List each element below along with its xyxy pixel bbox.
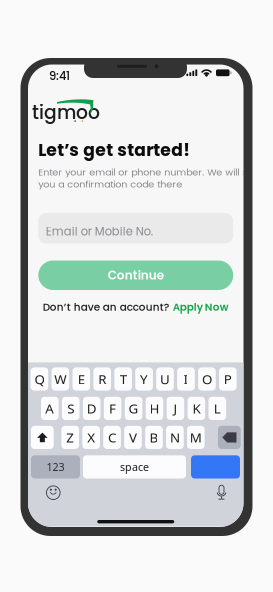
- button[interactable]: 123: [31, 455, 80, 478]
- staticText: 123: [46, 460, 64, 474]
- staticText: M: [190, 428, 202, 446]
- button[interactable]: space: [83, 455, 186, 478]
- staticText: X: [87, 428, 95, 446]
- button[interactable]: H: [146, 397, 163, 420]
- button[interactable]: P: [219, 367, 237, 391]
- button[interactable]: A: [41, 397, 59, 420]
- staticText: D: [87, 399, 97, 417]
- staticText: F: [109, 399, 116, 417]
- button[interactable]: L: [208, 397, 226, 420]
- button[interactable]: J: [167, 397, 184, 420]
- button[interactable]: R: [93, 367, 111, 391]
- button[interactable]: S: [62, 397, 79, 420]
- staticText: J: [173, 399, 177, 417]
- button[interactable]: Apply Now: [173, 300, 229, 314]
- staticText: Y: [140, 370, 148, 388]
- staticText: S: [67, 399, 74, 417]
- staticText: G: [129, 399, 139, 417]
- staticText: Continue: [108, 267, 164, 284]
- staticText: E: [78, 370, 85, 388]
- button[interactable]: Z: [61, 426, 79, 449]
- button[interactable]: Q: [31, 367, 48, 391]
- button[interactable]: F: [104, 397, 121, 420]
- button[interactable]: C: [103, 426, 121, 449]
- button[interactable]: U: [156, 367, 174, 391]
- staticText: T: [120, 370, 127, 388]
- button[interactable]: Dictate: [216, 485, 227, 500]
- staticText: Enter your email or phone number. We wil…: [38, 165, 265, 179]
- button[interactable]: B: [145, 426, 163, 449]
- staticText: U: [160, 370, 170, 388]
- staticText: R: [98, 370, 106, 388]
- button[interactable]: O: [198, 367, 216, 391]
- button[interactable]: E: [72, 367, 90, 391]
- button[interactable]: I: [177, 367, 195, 391]
- button[interactable]: Emoji: [46, 486, 60, 500]
- button[interactable]: Y: [135, 367, 153, 391]
- staticText: Apply Now: [173, 300, 229, 314]
- staticText: Q: [34, 370, 44, 388]
- staticText: Email or Mobile No.: [46, 223, 153, 240]
- button[interactable]: Return: [191, 455, 240, 478]
- staticText: space: [120, 460, 149, 474]
- staticText: Let’s get started!: [38, 138, 190, 162]
- button[interactable]: G: [125, 397, 142, 420]
- button[interactable]: Delete: [218, 426, 241, 449]
- staticText: O: [202, 370, 212, 388]
- staticText: B: [149, 428, 158, 446]
- staticText: P: [224, 370, 232, 388]
- staticText: N: [170, 428, 180, 446]
- staticText: I: [183, 370, 188, 388]
- button[interactable]: V: [124, 426, 142, 449]
- staticText: you a confirmation code there: [38, 177, 182, 191]
- button[interactable]: Continue: [38, 260, 233, 290]
- button[interactable]: N: [166, 426, 184, 449]
- button[interactable]: T: [114, 367, 132, 391]
- staticText: Z: [66, 428, 74, 446]
- button[interactable]: X: [82, 426, 100, 449]
- staticText: Don’t have an account?: [43, 300, 173, 314]
- staticText: 9:41: [49, 68, 70, 84]
- button[interactable]: K: [188, 397, 205, 420]
- button[interactable]: M: [187, 426, 205, 449]
- button[interactable]: Shift: [31, 426, 54, 449]
- staticText: L: [214, 399, 221, 417]
- button[interactable]: W: [51, 367, 69, 391]
- staticText: tigmoo: [32, 99, 100, 125]
- button[interactable]: D: [83, 397, 100, 420]
- staticText: K: [192, 399, 200, 417]
- staticText: V: [129, 428, 137, 446]
- staticText: W: [54, 370, 66, 388]
- staticText: H: [149, 399, 159, 417]
- staticText: A: [45, 399, 54, 417]
- staticText: C: [108, 428, 116, 446]
